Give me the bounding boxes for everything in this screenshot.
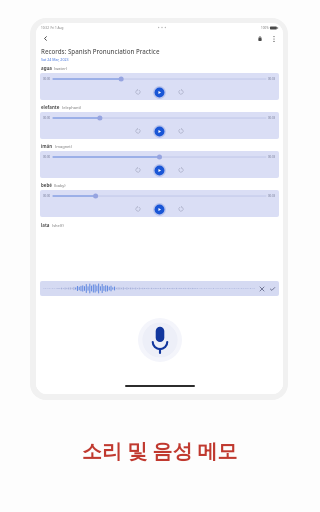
staticText: (water) [54, 66, 68, 71]
staticText: bebé [41, 182, 52, 188]
staticText: agua [41, 65, 52, 71]
button[interactable]: Forward 5 seconds [176, 204, 186, 214]
staticText: 10:32 Fri 1 Aug [41, 26, 64, 30]
button[interactable]: 00:00 [40, 112, 279, 139]
button[interactable]: Save recording [268, 285, 276, 293]
button[interactable]: Forward 5 seconds [176, 126, 186, 136]
staticText: (shelf) [52, 223, 64, 228]
staticText: lata [41, 222, 50, 228]
staticText: 00:00 [43, 194, 51, 198]
button[interactable]: Play [153, 125, 166, 138]
staticText: (elephant) [62, 105, 82, 110]
button[interactable]: Play [153, 203, 166, 216]
button[interactable]: Discard recording [258, 285, 266, 293]
staticText: 00:03 [268, 116, 276, 120]
button[interactable]: 00:00 [40, 190, 279, 217]
button[interactable]: Play [153, 86, 166, 99]
button[interactable]: Lock [254, 33, 265, 44]
staticText: 00:03 [268, 194, 276, 198]
button[interactable]: Rewind 5 seconds [133, 165, 143, 175]
staticText: Records: Spanish Pronunciation Practice [41, 47, 160, 55]
staticText: elefante [41, 104, 60, 110]
button[interactable]: Play [153, 164, 166, 177]
staticText: (baby) [54, 183, 66, 188]
button[interactable]: Rewind 5 seconds [133, 87, 143, 97]
button[interactable]: Back [40, 33, 51, 44]
staticText: 소리 및 음성 메모 [82, 437, 238, 464]
button[interactable]: Rewind 5 seconds [133, 126, 143, 136]
button[interactable]: 00:00 [40, 73, 279, 100]
button[interactable]: Record voice memo [138, 318, 182, 362]
staticText: (magnet) [55, 144, 73, 149]
button[interactable]: Forward 5 seconds [176, 87, 186, 97]
staticText: imán [41, 143, 53, 149]
button[interactable]: Rewind 5 seconds [133, 204, 143, 214]
staticText: Sat 24 Mar, 2023 [41, 57, 69, 62]
button[interactable]: Forward 5 seconds [176, 165, 186, 175]
staticText: 00:00 [43, 116, 51, 120]
staticText: 100% [261, 26, 269, 30]
staticText: 00:03 [268, 155, 276, 159]
staticText: 00:03 [268, 77, 276, 81]
staticText: 00:00 [43, 77, 51, 81]
button[interactable]: More options [268, 33, 279, 44]
button[interactable]: 00:00 [40, 151, 279, 178]
staticText: 00:00 [43, 155, 51, 159]
